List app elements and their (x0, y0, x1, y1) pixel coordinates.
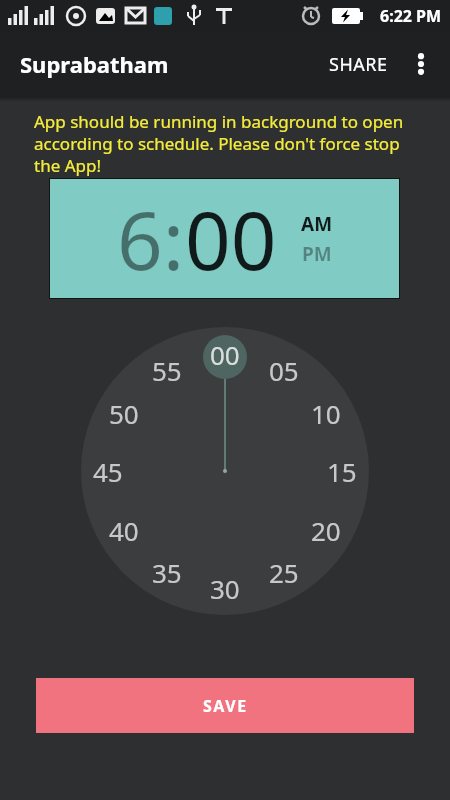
button[interactable] (403, 32, 439, 96)
button[interactable]: 6: (117, 184, 185, 293)
staticText: 05 (269, 353, 299, 388)
staticText: 40 (109, 513, 139, 548)
staticText: SAVE (203, 695, 248, 717)
staticText: 15 (327, 454, 357, 489)
button[interactable]: AM (301, 211, 333, 237)
staticText: 35 (152, 555, 182, 590)
staticText: 25 (269, 555, 299, 590)
staticText: 20 (311, 513, 341, 548)
staticText: 6:22 PM (380, 5, 442, 27)
button[interactable] (81, 327, 369, 615)
button[interactable]: PM (302, 241, 332, 267)
staticText: 10 (311, 396, 341, 431)
button[interactable]: 00 (185, 184, 277, 293)
staticText: 55 (152, 353, 182, 388)
staticText: SHARE (329, 52, 388, 77)
staticText: App should be running in background to o… (34, 110, 404, 177)
staticText: 45 (93, 454, 123, 489)
staticText: 00 (210, 337, 240, 372)
button[interactable]: SHARE (318, 32, 398, 96)
button[interactable]: SAVE (36, 678, 414, 733)
staticText: 30 (210, 571, 240, 606)
staticText: Suprabatham (20, 49, 169, 79)
staticText: 50 (109, 396, 139, 431)
